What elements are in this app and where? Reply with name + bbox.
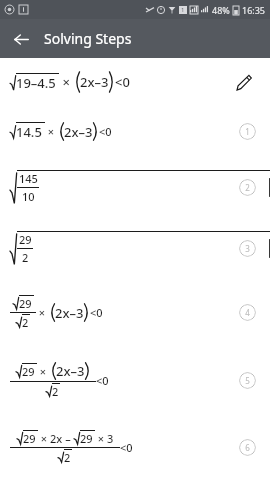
staticText: 14.5 [16, 123, 42, 141]
staticText: × 3 [95, 431, 114, 446]
button[interactable]: Step 6 [239, 439, 256, 456]
staticText: 5 [245, 375, 250, 386]
staticText: 4 [245, 307, 250, 318]
staticText: 16:35 [242, 4, 266, 16]
staticText: 29 [19, 296, 32, 311]
button[interactable]: Step 4 [239, 304, 256, 321]
staticText: 2 [52, 384, 59, 399]
staticText: <0 [99, 124, 112, 139]
button[interactable]: 145 [0, 156, 270, 218]
staticText: 2x–3 [64, 123, 93, 141]
staticText: 2x–3 [56, 362, 85, 380]
button[interactable]: Edit [230, 69, 256, 95]
staticText: 29 [23, 431, 36, 446]
button[interactable]: 29 [0, 414, 270, 480]
staticText: <0 [90, 305, 103, 320]
staticText: 29 [22, 364, 35, 379]
button[interactable]: Step 5 [239, 372, 256, 389]
staticText: × [59, 73, 74, 91]
staticText: × [36, 305, 49, 320]
staticText: × [37, 364, 50, 379]
button[interactable]: 29 [0, 278, 270, 346]
staticText: Solving Steps [44, 29, 132, 48]
button[interactable]: 19–4.5 [0, 58, 270, 106]
staticText: 2 [64, 450, 71, 465]
staticText: 2 [22, 250, 29, 265]
staticText: 1 [245, 126, 250, 137]
button[interactable]: 29 [0, 218, 270, 278]
staticText: <0 [120, 440, 133, 455]
staticText: 2 [245, 182, 250, 193]
staticText: × [45, 124, 58, 139]
staticText: 48% [212, 4, 230, 16]
staticText: 29 [80, 431, 93, 446]
staticText: 145 [19, 171, 38, 186]
staticText: 29 [19, 232, 32, 247]
button[interactable]: 29 [0, 346, 270, 414]
button[interactable]: Step 2 [239, 179, 256, 196]
staticText: 2x–3 [55, 304, 84, 322]
staticText: 10 [22, 189, 35, 204]
button[interactable]: Step 1 [239, 123, 256, 140]
staticText: 3 [245, 243, 250, 254]
button[interactable]: Step 3 [239, 240, 256, 257]
staticText: 6 [245, 442, 250, 453]
staticText: 1 [181, 6, 185, 14]
staticText: <0 [96, 373, 109, 388]
staticText: 2x–3 [80, 73, 109, 91]
button[interactable]: Back [6, 24, 36, 54]
staticText: 19–4.5 [16, 74, 56, 92]
staticText: 2 [22, 315, 29, 330]
button[interactable]: 14.5 [0, 106, 270, 156]
staticText: × 2x – [38, 431, 74, 446]
staticText: <0 [115, 73, 130, 91]
